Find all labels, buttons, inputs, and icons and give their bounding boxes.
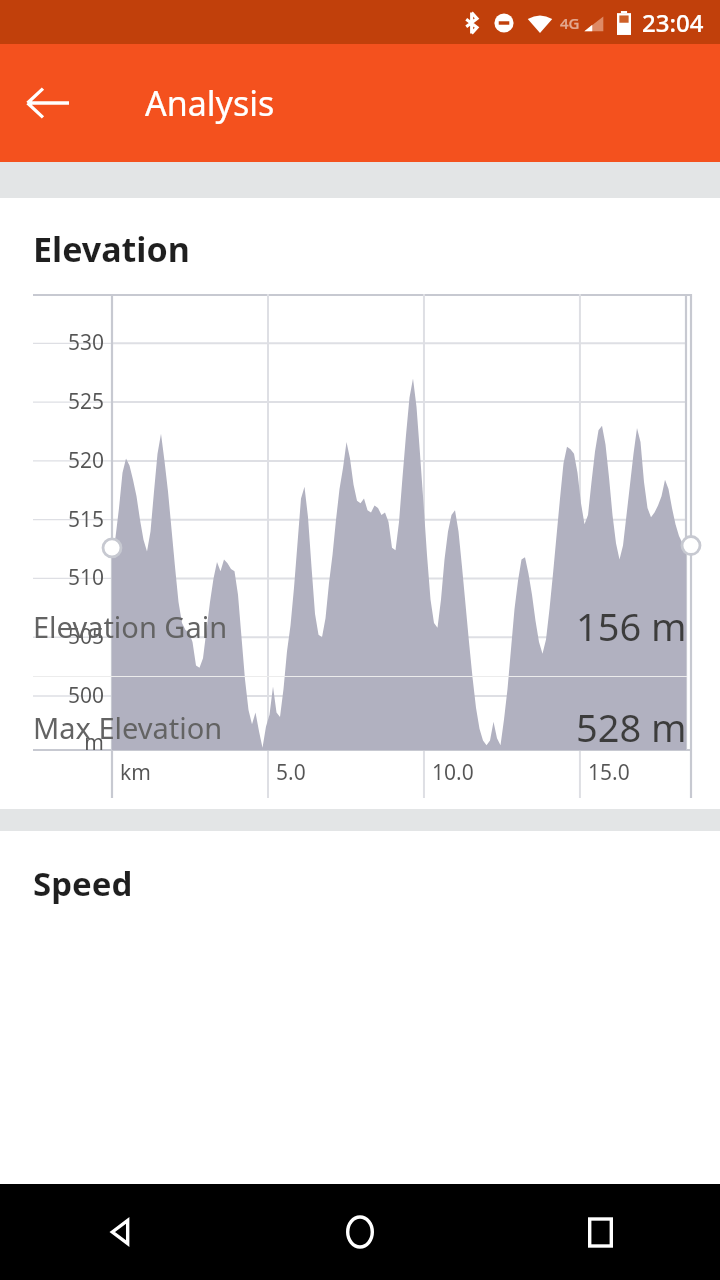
staticText: 5.0 — [276, 758, 306, 787]
staticText: 23:04 — [642, 6, 704, 39]
button[interactable]: Home — [240, 1184, 480, 1280]
button[interactable]: Recent apps — [480, 1184, 720, 1280]
staticText: 10.0 — [432, 758, 474, 787]
staticText: 505 — [32, 622, 104, 651]
staticText: 515 — [32, 505, 104, 534]
staticText: 528 m — [576, 701, 687, 753]
staticText: 500 — [32, 681, 104, 710]
staticText: 4G — [560, 13, 580, 33]
staticText: 15.0 — [588, 758, 630, 787]
staticText: Max Elevation — [33, 708, 223, 747]
staticText: Speed — [33, 861, 133, 906]
staticText: km — [120, 758, 151, 787]
staticText: Analysis — [145, 80, 275, 126]
staticText: 520 — [32, 446, 104, 475]
staticText: Elevation Gain — [33, 607, 228, 646]
staticText: 156 m — [576, 600, 687, 652]
staticText: 510 — [32, 563, 104, 592]
button[interactable]: Back — [0, 1184, 240, 1280]
staticText: m — [32, 728, 104, 757]
button[interactable]: Navigate up — [18, 73, 78, 133]
staticText: 525 — [32, 387, 104, 416]
button[interactable]: Max Elevation — [0, 677, 720, 777]
button[interactable]: Elevation Gain — [0, 576, 720, 676]
staticText: Elevation — [33, 226, 190, 272]
staticText: 530 — [32, 328, 104, 357]
